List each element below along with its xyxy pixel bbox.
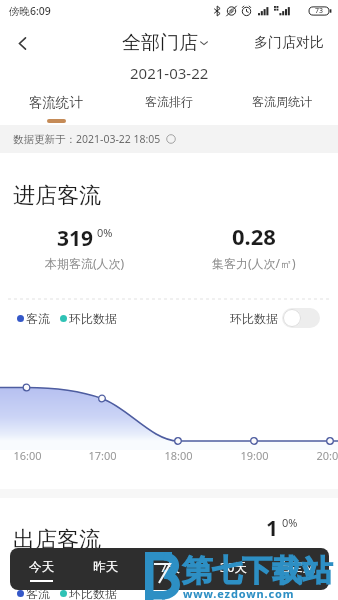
staticText: 1 [266, 514, 279, 543]
staticText: 20:00 [316, 448, 338, 463]
staticText: 出店客流 [13, 526, 101, 554]
button[interactable]: 30天 [201, 548, 265, 590]
staticText: 集客力(人次/㎡) [212, 255, 296, 271]
staticText: 0% [282, 515, 298, 530]
staticText: 2021-03-22 [130, 63, 209, 83]
button[interactable]: Toggle comparison data [282, 308, 320, 328]
button[interactable]: 今天 [10, 548, 73, 590]
staticText: 16:00 [13, 448, 42, 463]
button[interactable]: 自定义 [265, 548, 329, 590]
staticText: 客流 [26, 586, 50, 600]
button[interactable]: Back [9, 30, 35, 56]
staticText: 7天 [160, 559, 180, 576]
staticText: 全部门店 [122, 31, 198, 55]
button[interactable]: 7天 [137, 548, 201, 590]
staticText: 傍晚6:09 [9, 4, 51, 18]
staticText: 数据更新于：2021-03-22 18:05 [13, 132, 161, 146]
button[interactable]: 客流统计 [0, 94, 112, 126]
button[interactable]: 昨天 [73, 548, 137, 590]
staticText: 18:00 [164, 448, 193, 463]
staticText: 本期客流(人次) [45, 255, 125, 271]
staticText: 319 [57, 224, 94, 253]
staticText: 多门店对比 [254, 34, 324, 52]
button[interactable]: 多门店对比 [254, 34, 324, 52]
button[interactable]: 全部门店 [122, 31, 208, 55]
staticText: 昨天 [93, 559, 118, 575]
staticText: 0.28 [232, 221, 276, 251]
staticText: 环比数据 [69, 586, 117, 600]
staticText: 19:00 [240, 448, 269, 463]
staticText: 客流周统计 [252, 94, 312, 109]
button[interactable]: 客流排行 [112, 94, 225, 126]
staticText: 客流 [26, 311, 50, 326]
staticText: 73 [315, 6, 324, 16]
staticText: 今天 [29, 559, 54, 575]
staticText: 环比数据 [69, 311, 117, 326]
staticText: 17:00 [88, 448, 117, 463]
staticText: 客流统计 [29, 94, 83, 111]
staticText: 客流排行 [145, 94, 193, 109]
staticText: 30天 [220, 559, 247, 576]
staticText: 自定义 [278, 559, 316, 575]
staticText: www.ezdown.com [183, 586, 295, 600]
staticText: 0% [97, 225, 113, 240]
staticText: 第七下载站 [182, 552, 332, 590]
staticText: 进店客流 [13, 182, 101, 210]
button[interactable]: 客流周统计 [225, 94, 338, 126]
staticText: 环比数据 [230, 311, 278, 326]
